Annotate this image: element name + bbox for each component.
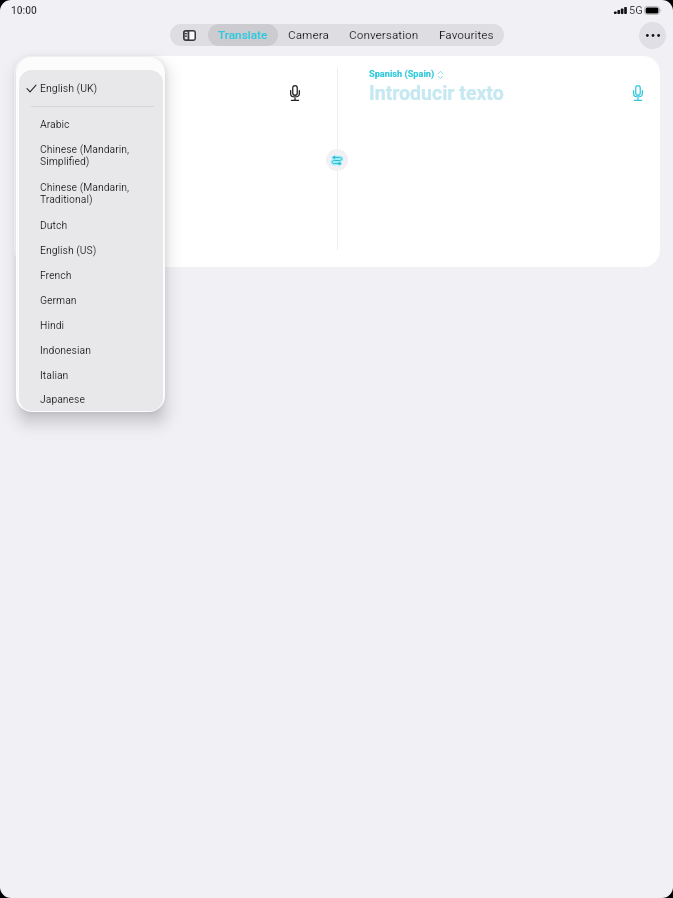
staticText: Dutch bbox=[40, 219, 68, 231]
staticText: Hindi bbox=[40, 319, 65, 331]
button[interactable]: Dutch bbox=[19, 212, 163, 237]
button[interactable]: English (UK) bbox=[19, 70, 163, 106]
button[interactable]: Italian bbox=[19, 362, 163, 387]
staticText: Indonesian bbox=[40, 344, 91, 356]
staticText: Conversation bbox=[349, 28, 419, 42]
staticText: German bbox=[40, 294, 77, 306]
button[interactable]: Hindi bbox=[19, 312, 163, 337]
staticText: English (US) bbox=[40, 244, 97, 256]
staticText: Favourites bbox=[439, 28, 494, 42]
button[interactable]: Chinese (Mandarin, Traditional) bbox=[19, 174, 163, 212]
button[interactable]: Japanese bbox=[19, 387, 163, 411]
button[interactable]: Camera bbox=[278, 24, 339, 46]
button[interactable]: Microphone bbox=[283, 81, 307, 105]
button[interactable]: Microphone bbox=[626, 81, 650, 105]
staticText: Chinese (Mandarin, Simplified) bbox=[40, 143, 130, 168]
staticText: Chinese (Mandarin, Traditional) bbox=[40, 181, 130, 206]
button[interactable]: French bbox=[19, 262, 163, 287]
staticText: Japanese bbox=[40, 393, 85, 405]
staticText: Spanish (Spain) bbox=[369, 68, 435, 79]
staticText: Arabic bbox=[40, 118, 70, 130]
button[interactable]: More options bbox=[639, 22, 666, 49]
staticText: English (UK) bbox=[40, 82, 98, 94]
button[interactable]: Spanish (Spain) bbox=[369, 68, 443, 79]
staticText: Italian bbox=[40, 369, 69, 381]
button[interactable]: Favourites bbox=[429, 24, 504, 46]
button[interactable]: Swap languages bbox=[326, 149, 348, 171]
button[interactable]: Translate bbox=[208, 24, 278, 46]
staticText: 5G bbox=[629, 4, 643, 17]
staticText: French bbox=[40, 269, 72, 281]
button[interactable]: German bbox=[19, 287, 163, 312]
button[interactable]: Indonesian bbox=[19, 337, 163, 362]
button[interactable]: Conversation bbox=[339, 24, 429, 46]
button[interactable]: Chinese (Mandarin, Simplified) bbox=[19, 136, 163, 174]
button[interactable]: Arabic bbox=[19, 111, 163, 136]
staticText: Introducir texto bbox=[369, 82, 504, 105]
button[interactable]: English (US) bbox=[19, 237, 163, 262]
button[interactable]: Show sidebar bbox=[170, 24, 208, 46]
staticText: 10:00 bbox=[11, 5, 37, 17]
staticText: Translate bbox=[218, 28, 268, 42]
staticText: Camera bbox=[288, 28, 329, 42]
